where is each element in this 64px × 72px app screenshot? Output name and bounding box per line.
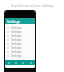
staticText: Settings bbox=[7, 19, 21, 24]
button[interactable]: Settings bbox=[5, 50, 35, 54]
button[interactable]: Tab bbox=[5, 60, 12, 65]
staticText: Settings bbox=[11, 46, 22, 50]
staticText: Settings bbox=[11, 38, 22, 42]
staticText: Settings bbox=[11, 30, 22, 34]
button[interactable]: Settings bbox=[5, 54, 35, 58]
staticText: Settings bbox=[11, 50, 22, 54]
button[interactable]: Tab bbox=[19, 60, 27, 65]
button[interactable]: Settings bbox=[5, 38, 35, 42]
staticText: A quick tour of your settings bbox=[11, 4, 54, 8]
button[interactable]: Tab bbox=[12, 60, 19, 65]
button[interactable]: Settings bbox=[5, 46, 35, 50]
button[interactable]: Settings bbox=[5, 30, 35, 34]
staticText: Settings bbox=[11, 34, 22, 38]
button[interactable]: Settings bbox=[5, 26, 35, 30]
button[interactable]: Tab bbox=[27, 60, 35, 65]
button[interactable]: Settings bbox=[5, 42, 35, 46]
staticText: Settings bbox=[11, 54, 22, 58]
button[interactable]: Settings bbox=[5, 18, 35, 24]
staticText: Settings bbox=[11, 26, 22, 30]
button[interactable]: Settings bbox=[5, 34, 35, 38]
staticText: Settings bbox=[11, 42, 22, 46]
